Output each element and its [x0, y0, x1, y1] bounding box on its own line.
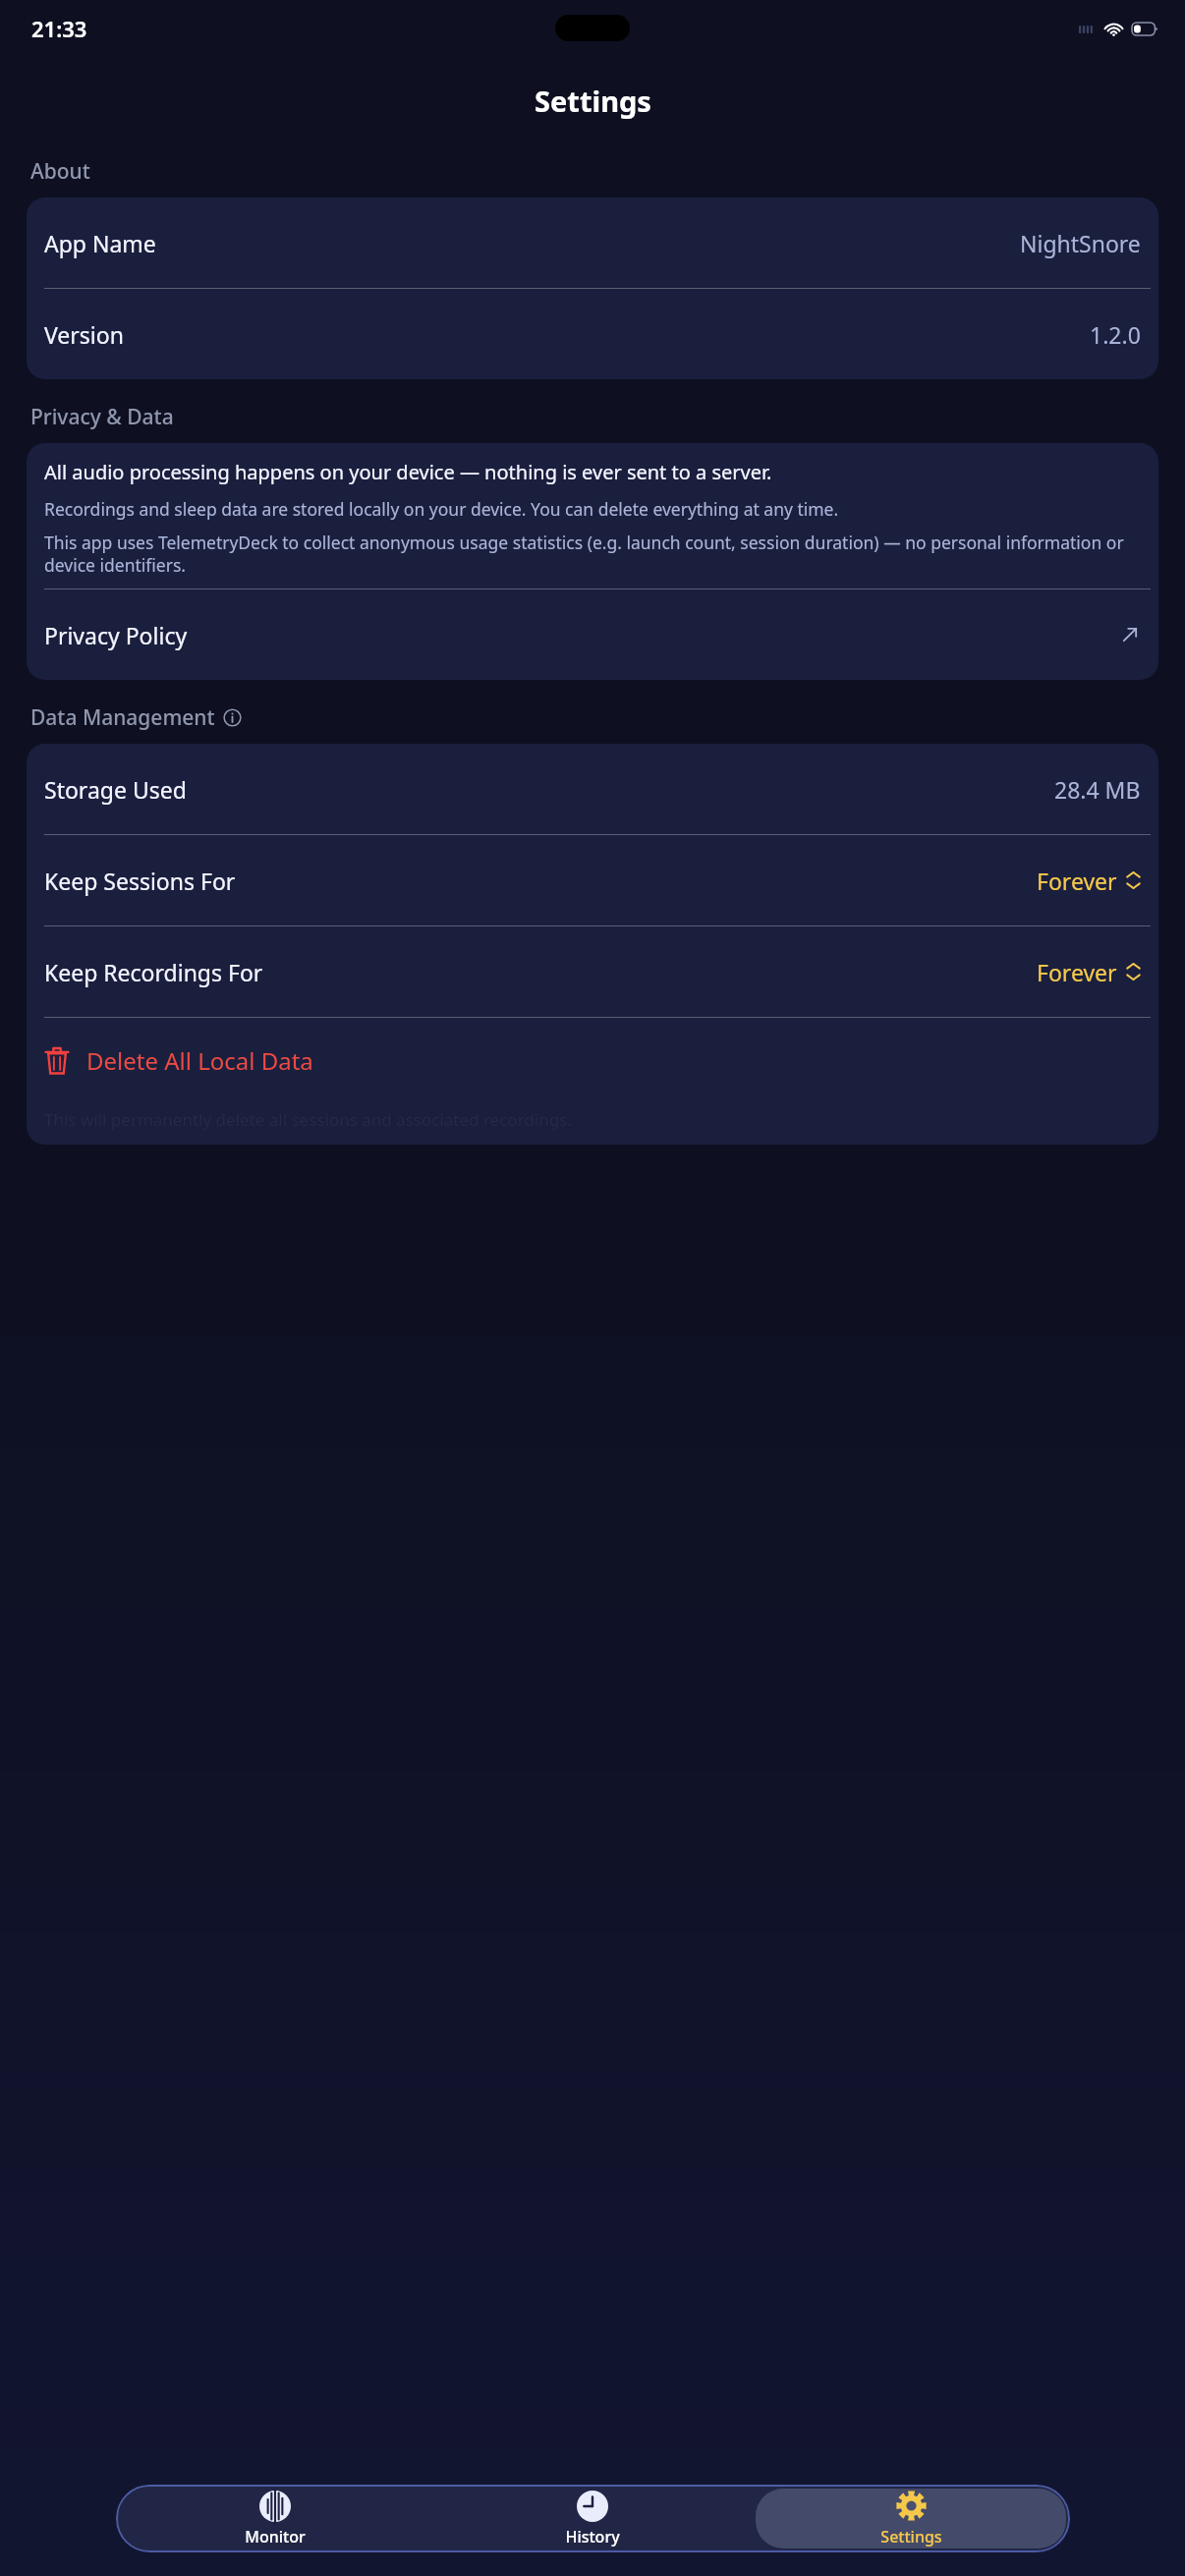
staticText: 1.2.0 — [1090, 319, 1141, 350]
button[interactable]: Monitor — [120, 2489, 429, 2548]
staticText: Data Management — [30, 703, 215, 732]
staticText: Forever — [1037, 866, 1117, 896]
button[interactable]: Keep Sessions For — [27, 835, 1158, 925]
staticText: Settings — [535, 82, 651, 120]
staticText: NightSnore — [1020, 228, 1141, 258]
button[interactable]: Keep Recordings For — [27, 926, 1158, 1017]
button[interactable]: Settings — [756, 2489, 1066, 2548]
staticText: Keep Recordings For — [44, 957, 263, 987]
staticText: Keep Sessions For — [44, 866, 236, 896]
staticText: About — [30, 157, 90, 186]
staticText: This app uses TelemetryDeck to collect a… — [44, 531, 1141, 577]
button[interactable]: Storage Used — [27, 744, 1158, 834]
button[interactable]: Delete All Local Data — [27, 1018, 1158, 1102]
staticText: 28.4 MB — [1054, 774, 1141, 805]
staticText: App Name — [44, 228, 156, 258]
staticText: Delete All Local Data — [86, 1044, 313, 1077]
staticText: Privacy Policy — [44, 620, 188, 650]
staticText: All audio processing happens on your dev… — [44, 459, 772, 485]
button[interactable]: Info — [223, 708, 242, 727]
staticText: History — [565, 2526, 620, 2548]
staticText: 21:33 — [31, 14, 87, 43]
staticText: Monitor — [245, 2526, 306, 2548]
button[interactable]: Version — [27, 289, 1158, 379]
staticText: Version — [44, 319, 124, 350]
button[interactable]: History — [437, 2489, 748, 2548]
staticText: Storage Used — [44, 774, 187, 805]
staticText: Recordings and sleep data are stored loc… — [44, 497, 839, 521]
staticText: Privacy & Data — [30, 403, 174, 431]
staticText: Forever — [1037, 957, 1117, 987]
button[interactable]: App Name — [27, 197, 1158, 288]
staticText: Settings — [880, 2526, 942, 2548]
button[interactable]: Privacy Policy — [27, 589, 1158, 680]
